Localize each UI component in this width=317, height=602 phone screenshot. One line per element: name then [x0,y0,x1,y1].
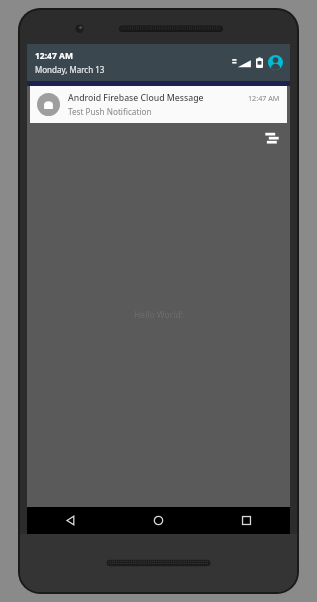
staticText: 12:47 AM [35,50,73,62]
button[interactable]: Home [114,507,202,534]
button[interactable]: Android Firebase Cloud Message [30,86,287,123]
button[interactable]: Sort [264,132,280,145]
staticText: Android Firebase Cloud Message [68,92,204,104]
button[interactable]: Back [27,507,114,534]
button[interactable]: Recent apps [202,507,290,534]
staticText: Monday, March 13 [35,64,105,75]
staticText: Hello World! [134,309,183,321]
button[interactable]: User account [268,55,283,70]
staticText: 12:47 AM [248,93,280,103]
staticText: Test Push Notification [68,106,152,117]
